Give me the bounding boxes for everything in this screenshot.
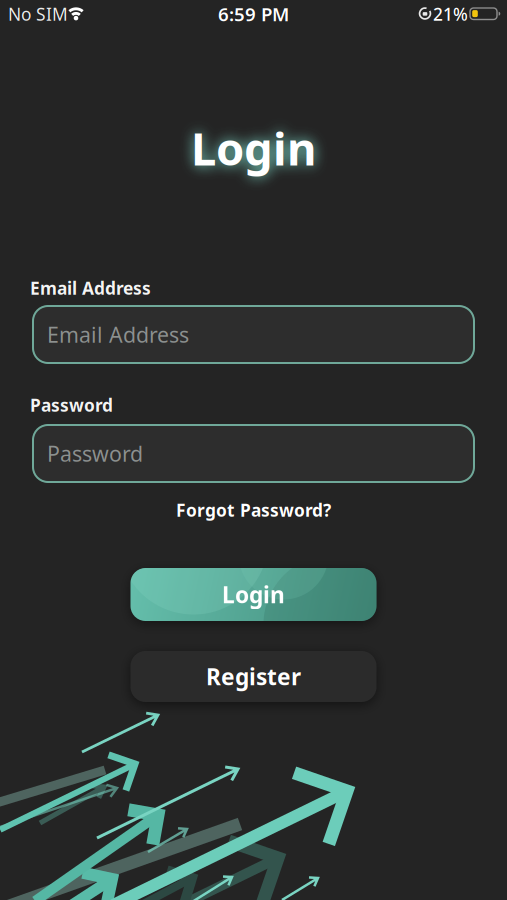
button[interactable]: Register [130, 651, 376, 702]
staticText: Login [222, 579, 285, 609]
button[interactable]: Login [130, 568, 376, 621]
staticText: Forgot Password? [176, 498, 331, 521]
staticText: No SIM [8, 2, 68, 25]
button[interactable]: Email Address [33, 306, 474, 363]
staticText: Email Address [30, 276, 151, 299]
staticText: Password [47, 439, 143, 468]
button[interactable]: Forgot Password? [133, 499, 373, 521]
staticText: 6:59 PM [218, 2, 289, 26]
button[interactable]: Password [33, 425, 474, 482]
staticText: Register [206, 661, 301, 691]
staticText: Email Address [47, 320, 189, 349]
staticText: 21% [433, 2, 468, 25]
staticText: Password [30, 393, 113, 416]
staticText: Login [191, 118, 316, 178]
